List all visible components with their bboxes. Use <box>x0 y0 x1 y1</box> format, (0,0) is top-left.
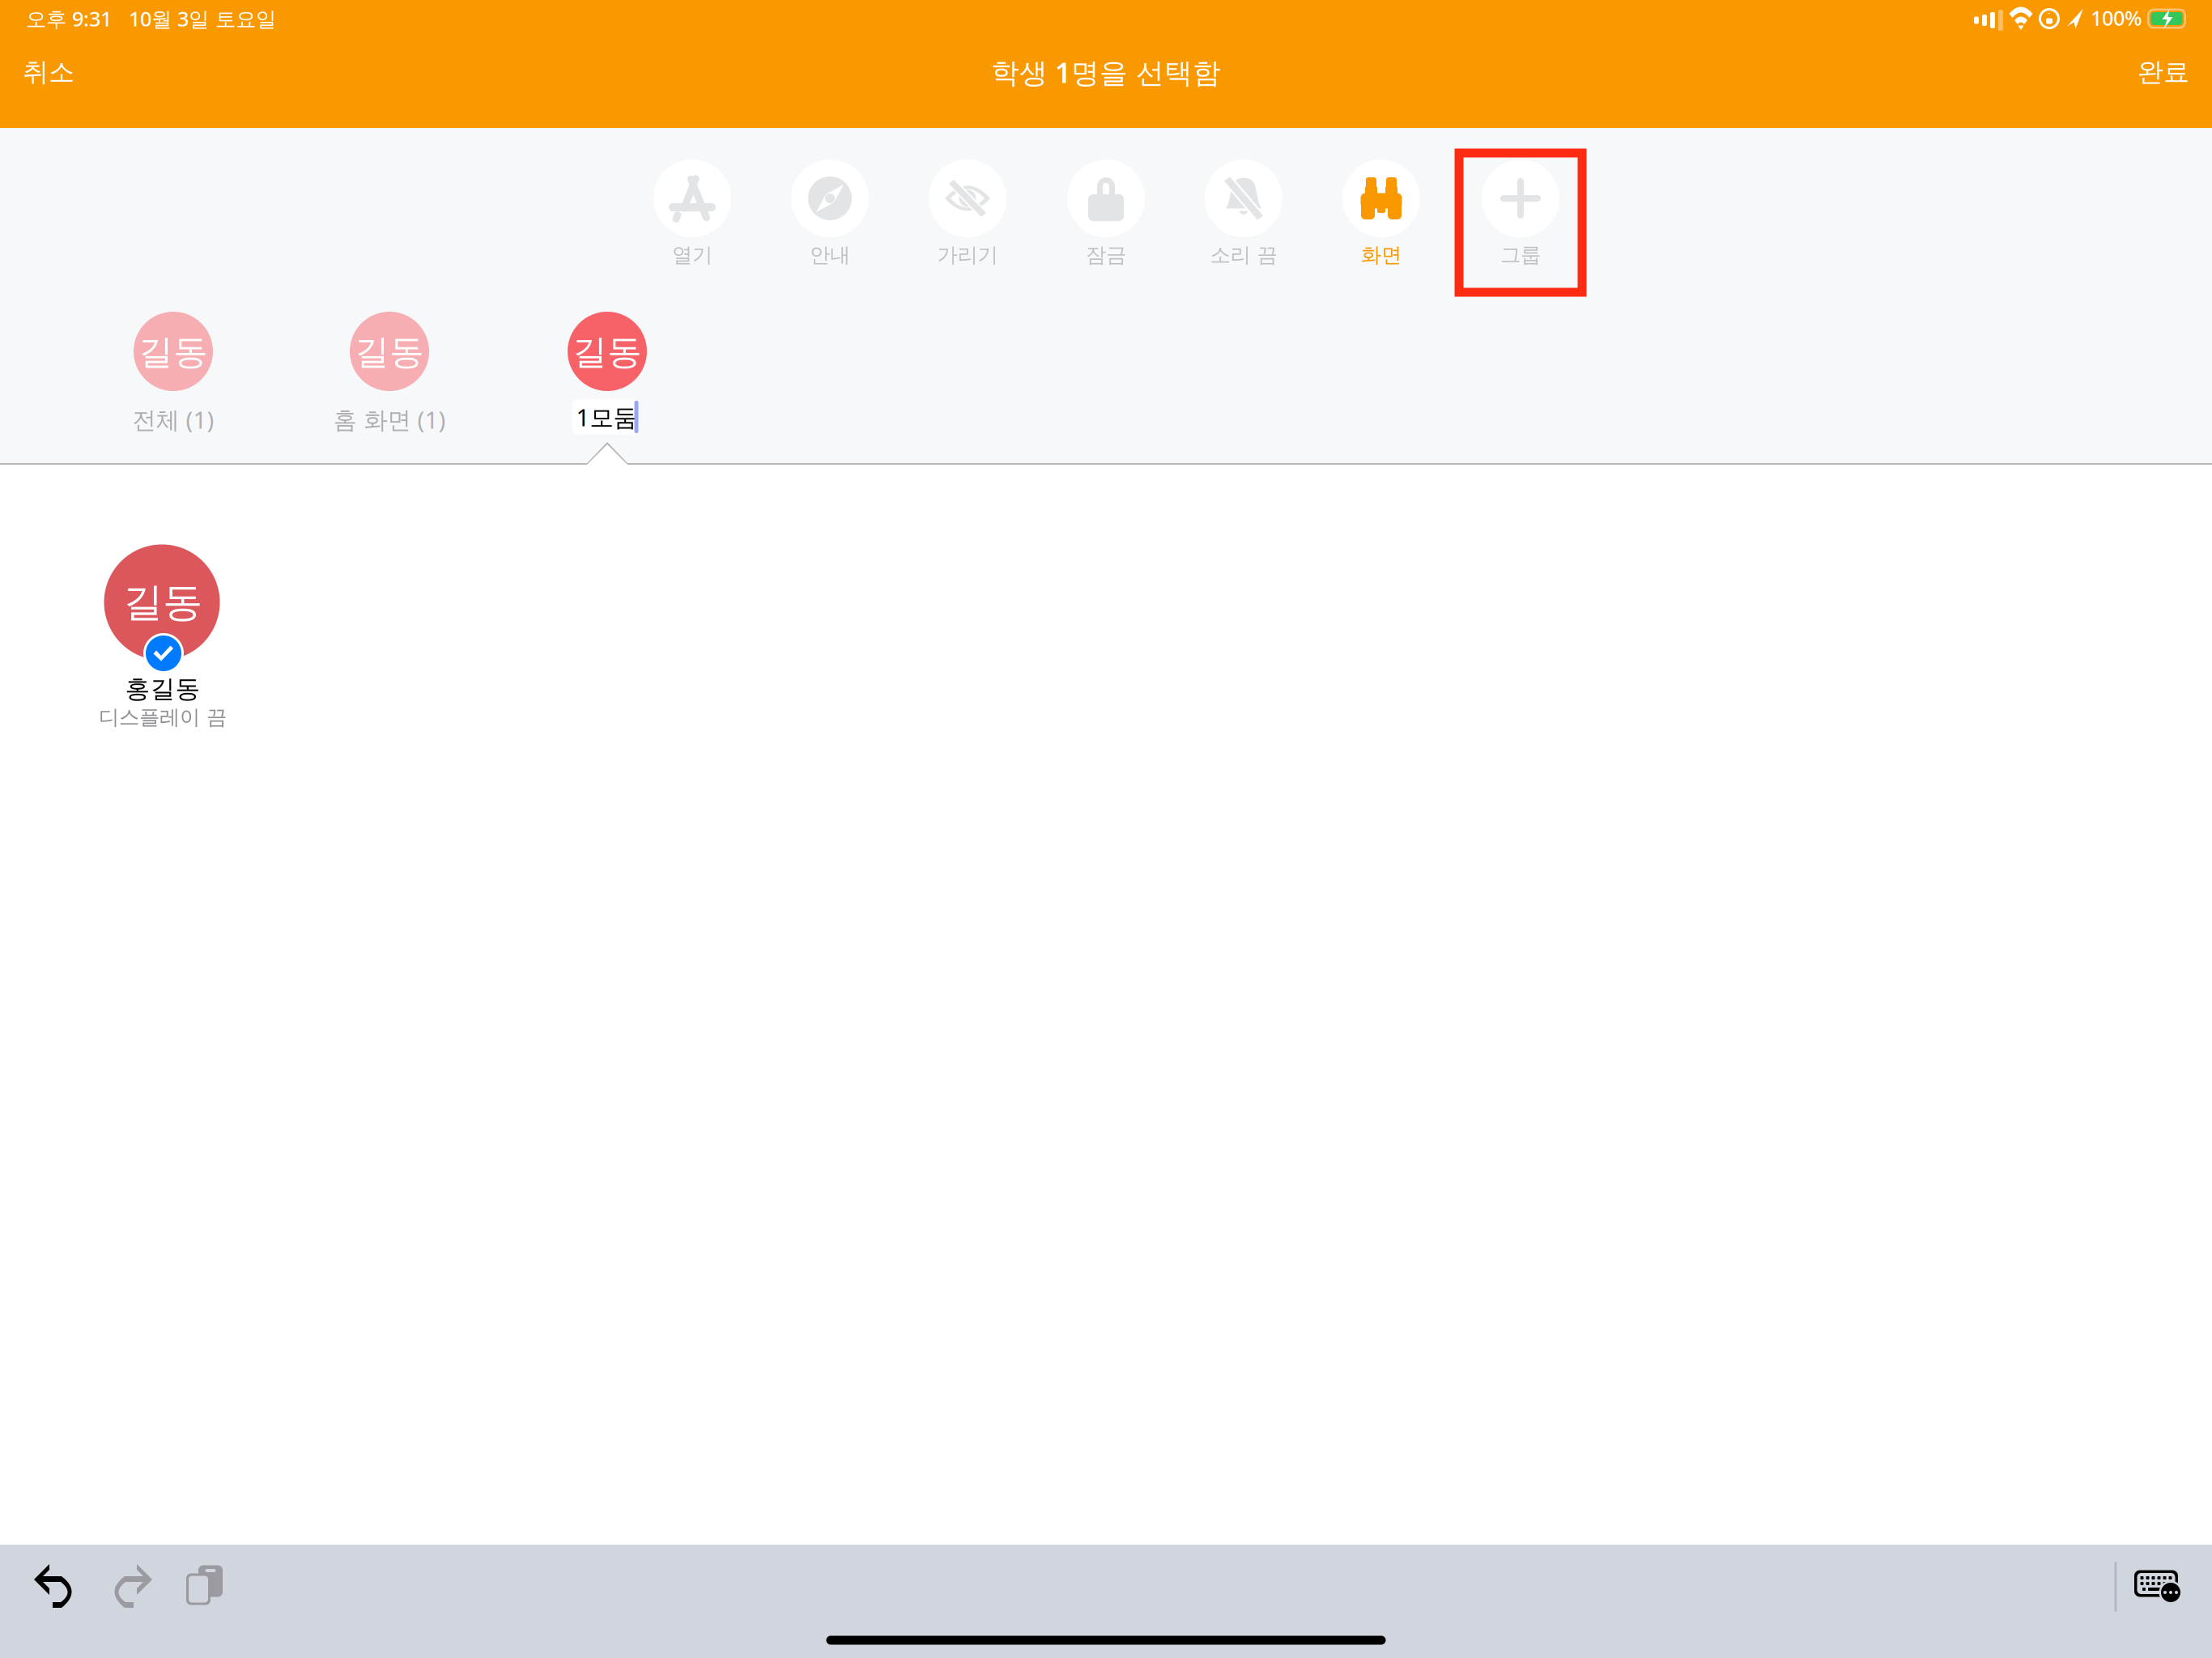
button[interactable]: 취소 <box>0 48 105 96</box>
staticText: 길동 <box>572 331 642 373</box>
staticText: 잠금 <box>1086 242 1126 268</box>
staticText: 가리기 <box>937 242 998 268</box>
button[interactable]: 길동 <box>68 312 279 441</box>
button[interactable]: 가리기 <box>903 154 1032 283</box>
staticText: 디스플레이 끔 <box>99 705 227 730</box>
staticText: 홈 화면 (1) <box>333 404 446 435</box>
button[interactable]: 화면 <box>1317 154 1446 283</box>
staticText: 길동 <box>355 331 424 373</box>
staticText: 전체 (1) <box>132 404 214 435</box>
button[interactable]: 그룹 <box>1456 154 1585 283</box>
button[interactable]: Redo <box>104 1562 155 1608</box>
button[interactable]: 완료 <box>2107 48 2212 96</box>
button[interactable]: Keyboard options <box>2132 1566 2185 1605</box>
staticText: 그룹 <box>1500 242 1541 268</box>
button[interactable]: Undo <box>32 1562 82 1608</box>
button[interactable]: 소리 끔 <box>1179 154 1308 283</box>
button[interactable]: 잠금 <box>1041 154 1171 283</box>
button[interactable]: Paste <box>181 1562 223 1608</box>
staticText: 취소 <box>23 56 74 88</box>
button[interactable]: 열기 <box>627 154 757 283</box>
staticText: 화면 <box>1361 242 1402 268</box>
staticText: 길동 <box>123 578 202 627</box>
button[interactable]: 안내 <box>765 154 895 283</box>
staticText: 100% <box>2091 4 2142 31</box>
staticText: 안내 <box>810 242 850 268</box>
staticText: 1모둠 <box>576 401 637 433</box>
staticText: 학생 1명을 선택함 <box>991 53 1221 91</box>
staticText: 소리 끔 <box>1210 242 1277 268</box>
button[interactable]: 길동 <box>40 497 283 756</box>
staticText: 길동 <box>138 331 208 373</box>
button[interactable]: 길동 <box>502 312 713 441</box>
staticText: 홍길동 <box>125 674 200 704</box>
staticText: 오후 9:31 10월 3일 토요일 <box>26 5 276 32</box>
button[interactable]: 길동 <box>284 312 495 441</box>
staticText: 열기 <box>672 242 713 268</box>
staticText: 완료 <box>2138 56 2189 88</box>
